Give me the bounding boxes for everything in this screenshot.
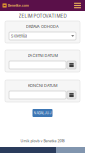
button[interactable]: Menu: [74, 0, 85, 11]
staticText: Slovenija: [11, 34, 27, 38]
button[interactable]: Benetke.com: [0, 0, 29, 11]
staticText: Benetke.com: [8, 3, 29, 8]
staticText: KONČNI DATUM: [28, 83, 57, 88]
staticText: NADALJUJ: [33, 111, 51, 115]
button[interactable]: Choose start date: [67, 61, 76, 69]
button[interactable]: Choose end date: [67, 91, 76, 99]
staticText: Urnik plovb v Benetke 2018: [20, 139, 64, 143]
button[interactable]: NADALJUJ: [32, 109, 52, 117]
staticText: ZAČETNI DATUM: [27, 53, 57, 58]
staticText: DRŽAVA ODHODA: [26, 24, 59, 29]
staticText: ŽELIM POTOVATI MED: [18, 13, 66, 19]
